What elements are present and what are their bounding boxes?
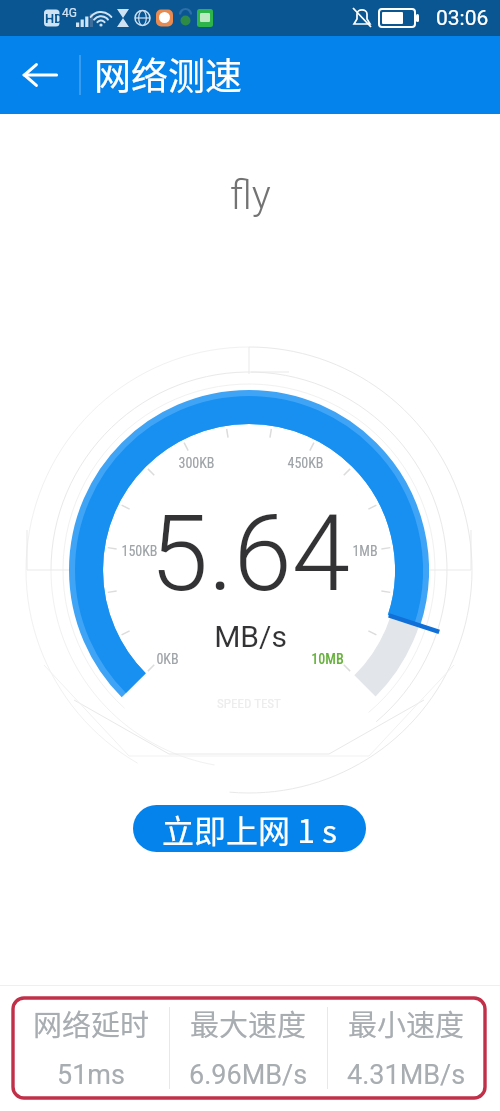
staticText: 4G: [62, 6, 77, 20]
staticText: 5.64: [150, 493, 350, 616]
staticText: MB/s: [214, 619, 287, 654]
staticText: 300KB: [178, 455, 215, 471]
staticText: fly: [230, 172, 271, 219]
staticText: 网络测速: [94, 47, 242, 101]
staticText: 450KB: [287, 455, 324, 471]
staticText: SPEED TEST: [217, 696, 281, 711]
staticText: 最大速度: [190, 1002, 307, 1044]
button[interactable]: Back: [14, 49, 66, 101]
staticText: HD: [45, 11, 63, 26]
staticText: 03:06: [436, 6, 489, 31]
staticText: 4.31MB/s: [347, 1059, 466, 1091]
button[interactable]: 最大速度: [170, 998, 327, 1091]
button[interactable]: 最小速度: [328, 998, 485, 1091]
staticText: 10MB: [311, 651, 344, 667]
staticText: 51ms: [57, 1059, 125, 1091]
staticText: 最小速度: [348, 1002, 465, 1044]
staticText: 立即上网 1 s: [162, 806, 338, 852]
button[interactable]: 立即上网 1 s: [133, 805, 366, 852]
staticText: 0KB: [156, 651, 179, 667]
button[interactable]: 网络延时: [13, 998, 169, 1091]
staticText: 150KB: [121, 543, 158, 559]
staticText: 网络延时: [33, 1002, 150, 1044]
staticText: 1MB: [352, 543, 378, 559]
staticText: 6.96MB/s: [189, 1059, 308, 1091]
